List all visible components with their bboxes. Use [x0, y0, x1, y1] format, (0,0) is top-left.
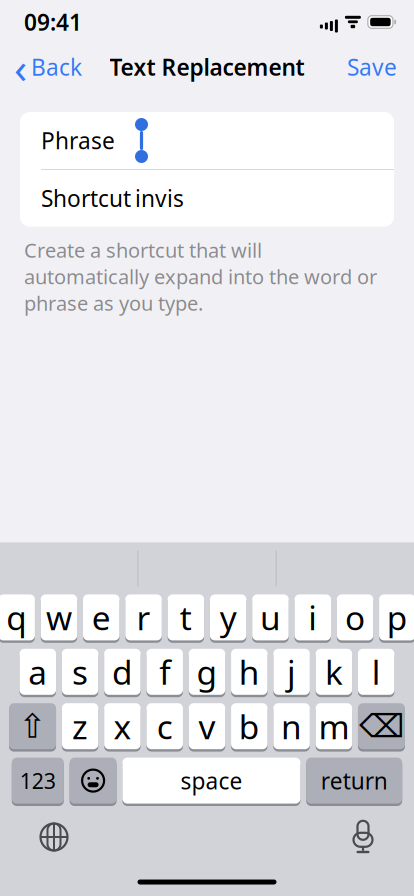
button[interactable]: r: [125, 594, 162, 643]
staticText: o: [345, 595, 365, 640]
staticText: t: [180, 595, 192, 640]
button[interactable]: k: [316, 649, 352, 697]
staticText: f: [159, 650, 170, 694]
staticText: ⌫: [359, 708, 404, 744]
staticText: w: [46, 595, 72, 640]
button[interactable]: Save: [347, 46, 414, 88]
button[interactable]: Delete: [358, 703, 405, 752]
button[interactable]: o: [337, 594, 373, 643]
button[interactable]: y: [210, 594, 246, 643]
staticText: 09:41: [24, 7, 82, 37]
staticText: Phrase: [41, 125, 115, 155]
staticText: b: [239, 704, 260, 748]
button[interactable]: Emoji: [70, 758, 117, 806]
staticText: q: [6, 595, 27, 640]
button[interactable]: i: [294, 594, 331, 643]
button[interactable]: x: [104, 703, 141, 752]
staticText: g: [196, 650, 217, 694]
button[interactable]: g: [189, 649, 225, 697]
staticText: v: [198, 704, 215, 748]
staticText: ⇧: [19, 707, 47, 745]
staticText: l: [372, 650, 381, 694]
button[interactable]: c: [146, 703, 183, 752]
staticText: Back: [31, 52, 82, 82]
button[interactable]: n: [273, 703, 310, 752]
button[interactable]: Shift: [9, 703, 56, 752]
staticText: Shortcut: [41, 183, 131, 213]
button[interactable]: q: [0, 594, 35, 643]
staticText: d: [112, 650, 133, 694]
button[interactable]: w: [41, 594, 77, 643]
button[interactable]: j: [273, 649, 310, 697]
button[interactable]: 123: [12, 758, 64, 806]
button[interactable]: s: [62, 649, 98, 697]
staticText: e: [92, 595, 111, 640]
button[interactable]: a: [20, 649, 56, 697]
staticText: z: [72, 704, 88, 748]
button[interactable]: f: [146, 649, 183, 697]
staticText: Text Replacement: [109, 52, 304, 82]
button[interactable]: u: [252, 594, 289, 643]
staticText: k: [325, 650, 343, 694]
button[interactable]: d: [104, 649, 141, 697]
button[interactable]: l: [358, 649, 394, 697]
button[interactable]: space: [122, 758, 300, 806]
button[interactable]: return: [306, 758, 402, 806]
button[interactable]: v: [189, 703, 225, 752]
staticText: u: [260, 595, 281, 640]
staticText: return: [321, 765, 388, 796]
button[interactable]: b: [231, 703, 268, 752]
staticText: 123: [20, 766, 56, 795]
button[interactable]: Next keyboard: [28, 811, 80, 863]
button[interactable]: h: [231, 649, 268, 697]
staticText: a: [28, 650, 47, 694]
staticText: space: [180, 765, 242, 796]
staticText: p: [387, 595, 408, 640]
button[interactable]: Shortcut: [20, 170, 394, 227]
staticText: ‹: [14, 39, 27, 95]
staticText: invis: [135, 183, 184, 213]
button[interactable]: Phrase: [20, 112, 394, 169]
button[interactable]: z: [62, 703, 98, 752]
button[interactable]: m: [316, 703, 352, 752]
staticText: Save: [347, 52, 397, 82]
button[interactable]: t: [168, 594, 204, 643]
staticText: m: [318, 704, 349, 748]
staticText: x: [113, 704, 131, 748]
staticText: n: [281, 704, 302, 748]
button[interactable]: Dictation: [340, 809, 386, 865]
staticText: Create a shortcut that will automaticall…: [24, 237, 377, 316]
staticText: y: [220, 595, 237, 640]
staticText: r: [137, 595, 151, 640]
staticText: h: [239, 650, 260, 694]
staticText: c: [157, 704, 173, 748]
staticText: j: [287, 650, 296, 694]
button[interactable]: ‹: [0, 33, 82, 101]
button[interactable]: e: [83, 594, 119, 643]
staticText: s: [72, 650, 88, 694]
staticText: i: [308, 595, 317, 640]
button[interactable]: p: [379, 594, 414, 643]
